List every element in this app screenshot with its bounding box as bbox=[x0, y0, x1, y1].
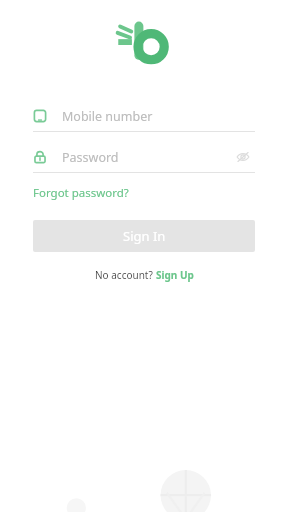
staticText: Forgot password? bbox=[33, 185, 129, 201]
button[interactable]: Show password bbox=[231, 145, 255, 169]
staticText: Sign Up bbox=[156, 268, 194, 282]
staticText: Sign In bbox=[123, 227, 166, 245]
button[interactable]: Sign In bbox=[33, 220, 255, 252]
staticText: Mobile number bbox=[62, 108, 153, 125]
button[interactable]: Password bbox=[33, 142, 255, 172]
button[interactable]: Mobile number bbox=[33, 101, 255, 131]
staticText: No account? bbox=[95, 268, 156, 282]
staticText: Password bbox=[62, 149, 119, 166]
button[interactable]: Sign Up bbox=[156, 268, 194, 282]
button[interactable]: Forgot password? bbox=[33, 185, 129, 201]
